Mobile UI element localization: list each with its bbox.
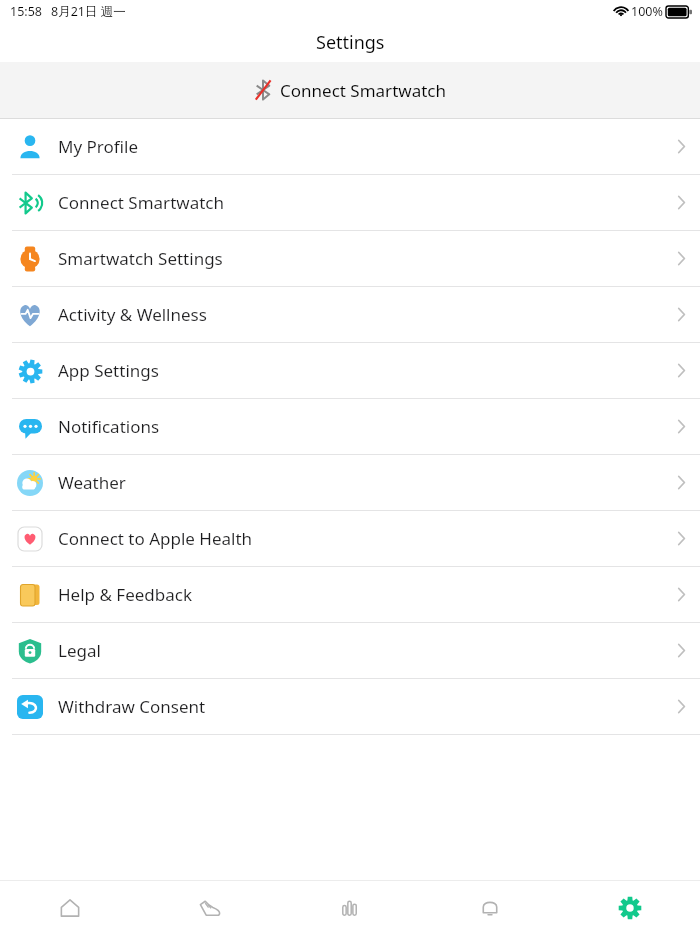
staticText: App Settings — [58, 359, 159, 382]
staticText: Legal — [58, 639, 101, 662]
staticText: Notifications — [58, 415, 160, 438]
staticText: My Profile — [58, 135, 138, 158]
staticText: Connect to Apple Health — [58, 527, 253, 550]
button[interactable]: Activity — [140, 881, 280, 934]
button[interactable]: Smartwatch Settings — [0, 231, 700, 287]
button[interactable]: Legal — [0, 623, 700, 679]
button[interactable]: Statistics — [280, 881, 420, 934]
button[interactable]: Activity & Wellness — [0, 287, 700, 343]
staticText: Connect Smartwatch — [280, 79, 446, 102]
staticText: Connect Smartwatch — [58, 191, 224, 214]
button[interactable]: Notifications — [0, 399, 700, 455]
staticText: Weather — [58, 471, 126, 494]
staticText: 15:58 — [10, 3, 42, 20]
button[interactable]: Settings — [560, 881, 700, 934]
button[interactable]: Connect Smartwatch — [0, 175, 700, 231]
staticText: Help & Feedback — [58, 583, 192, 606]
button[interactable]: Withdraw Consent — [0, 679, 700, 735]
staticText: Activity & Wellness — [58, 303, 207, 326]
button[interactable]: Home — [0, 881, 140, 934]
button[interactable]: Weather — [0, 455, 700, 511]
button[interactable]: My Profile — [0, 119, 700, 175]
button[interactable]: Connect Smartwatch — [0, 62, 700, 118]
button[interactable]: Help & Feedback — [0, 567, 700, 623]
staticText: Smartwatch Settings — [58, 247, 223, 270]
button[interactable]: Connect to Apple Health — [0, 511, 700, 567]
button[interactable]: App Settings — [0, 343, 700, 399]
staticText: Withdraw Consent — [58, 695, 206, 718]
button[interactable]: Notifications — [420, 881, 560, 934]
staticText: Settings — [316, 30, 385, 55]
staticText: 8月21日 週一 — [51, 3, 126, 20]
staticText: 100% — [631, 3, 663, 20]
